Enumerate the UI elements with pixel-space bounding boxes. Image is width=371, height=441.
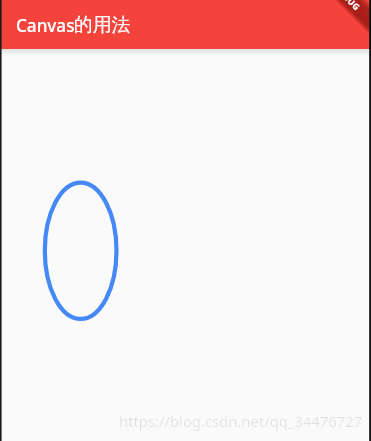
button[interactable]: Canvas xyxy=(0,0,371,49)
staticText: 的用法 xyxy=(74,13,131,37)
staticText: Canvas xyxy=(16,14,75,37)
staticText: https://blog.csdn.net/qq_34476727 xyxy=(119,411,363,431)
other: Ellipse drawn on canvas xyxy=(0,49,371,441)
other: Debug banner xyxy=(0,0,371,441)
